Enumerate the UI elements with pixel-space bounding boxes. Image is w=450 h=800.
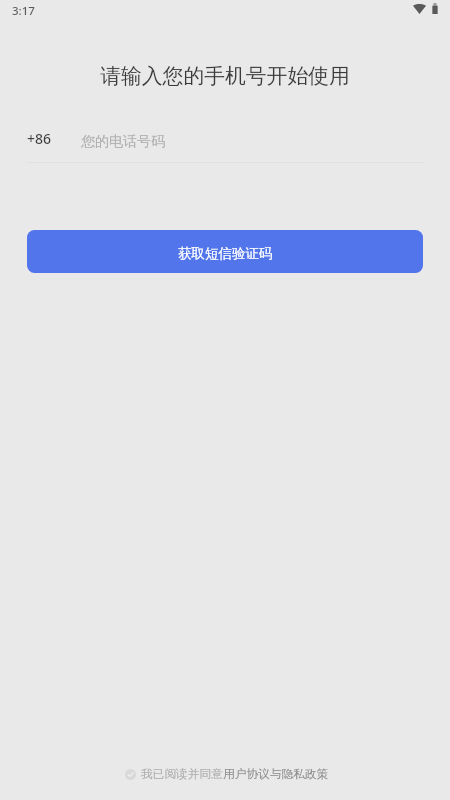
- other: Battery: [432, 3, 438, 14]
- staticText: 3:17: [12, 3, 35, 19]
- button[interactable]: 您的电话号码: [72, 124, 424, 156]
- button[interactable]: Agree to the terms: [123, 764, 331, 785]
- button[interactable]: 获取短信验证码: [27, 230, 423, 273]
- other: Wi-Fi signal: [413, 4, 426, 14]
- staticText: +86: [27, 129, 52, 148]
- staticText: 获取短信验证码: [178, 245, 273, 262]
- button[interactable]: +86: [21, 124, 65, 152]
- staticText: 您的电话号码: [81, 133, 165, 151]
- staticText: 我已阅读并同意: [141, 767, 223, 782]
- other: Agree to the terms: [125, 769, 136, 780]
- button[interactable]: 用户协议与隐私政策: [223, 767, 329, 782]
- staticText: 请输入您的手机号开始使用: [0, 63, 450, 89]
